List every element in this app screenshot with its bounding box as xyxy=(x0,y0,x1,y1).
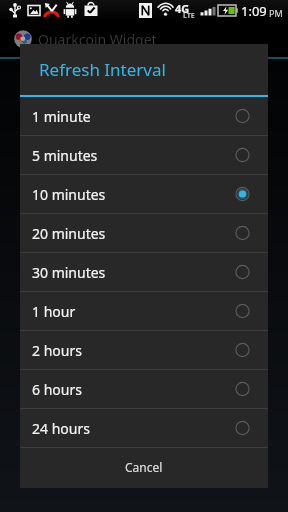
staticText: Cancel xyxy=(125,459,163,475)
staticText: 1:09 xyxy=(241,2,267,20)
button[interactable]: 30 minutes xyxy=(20,253,268,291)
button[interactable]: 1 hour xyxy=(20,292,268,330)
button[interactable]: 24 hours xyxy=(20,409,268,447)
staticText: 5 minutes xyxy=(32,146,98,165)
button[interactable]: 5 minutes xyxy=(20,136,268,174)
staticText: Refresh Interval xyxy=(39,58,166,81)
button[interactable]: Cancel xyxy=(20,448,268,486)
button[interactable]: 10 minutes xyxy=(20,175,268,213)
button[interactable]: 1 minute xyxy=(20,97,268,135)
staticText: 20 minutes xyxy=(32,224,106,243)
staticText: Quarkcoin Widget xyxy=(38,30,157,49)
staticText: 10 minutes xyxy=(32,185,106,204)
staticText: 24 hours xyxy=(32,419,90,438)
staticText: 30 minutes xyxy=(32,263,106,282)
button[interactable]: 2 hours xyxy=(20,331,268,369)
staticText: PM xyxy=(269,7,283,19)
staticText: 6 hours xyxy=(32,380,82,399)
button[interactable]: 6 hours xyxy=(20,370,268,408)
staticText: 1 hour xyxy=(32,302,76,321)
staticText: 4G xyxy=(175,1,190,16)
button[interactable]: 20 minutes xyxy=(20,214,268,252)
staticText: 2 hours xyxy=(32,341,82,360)
staticText: LTE xyxy=(183,11,195,21)
staticText: 1 minute xyxy=(32,107,91,126)
